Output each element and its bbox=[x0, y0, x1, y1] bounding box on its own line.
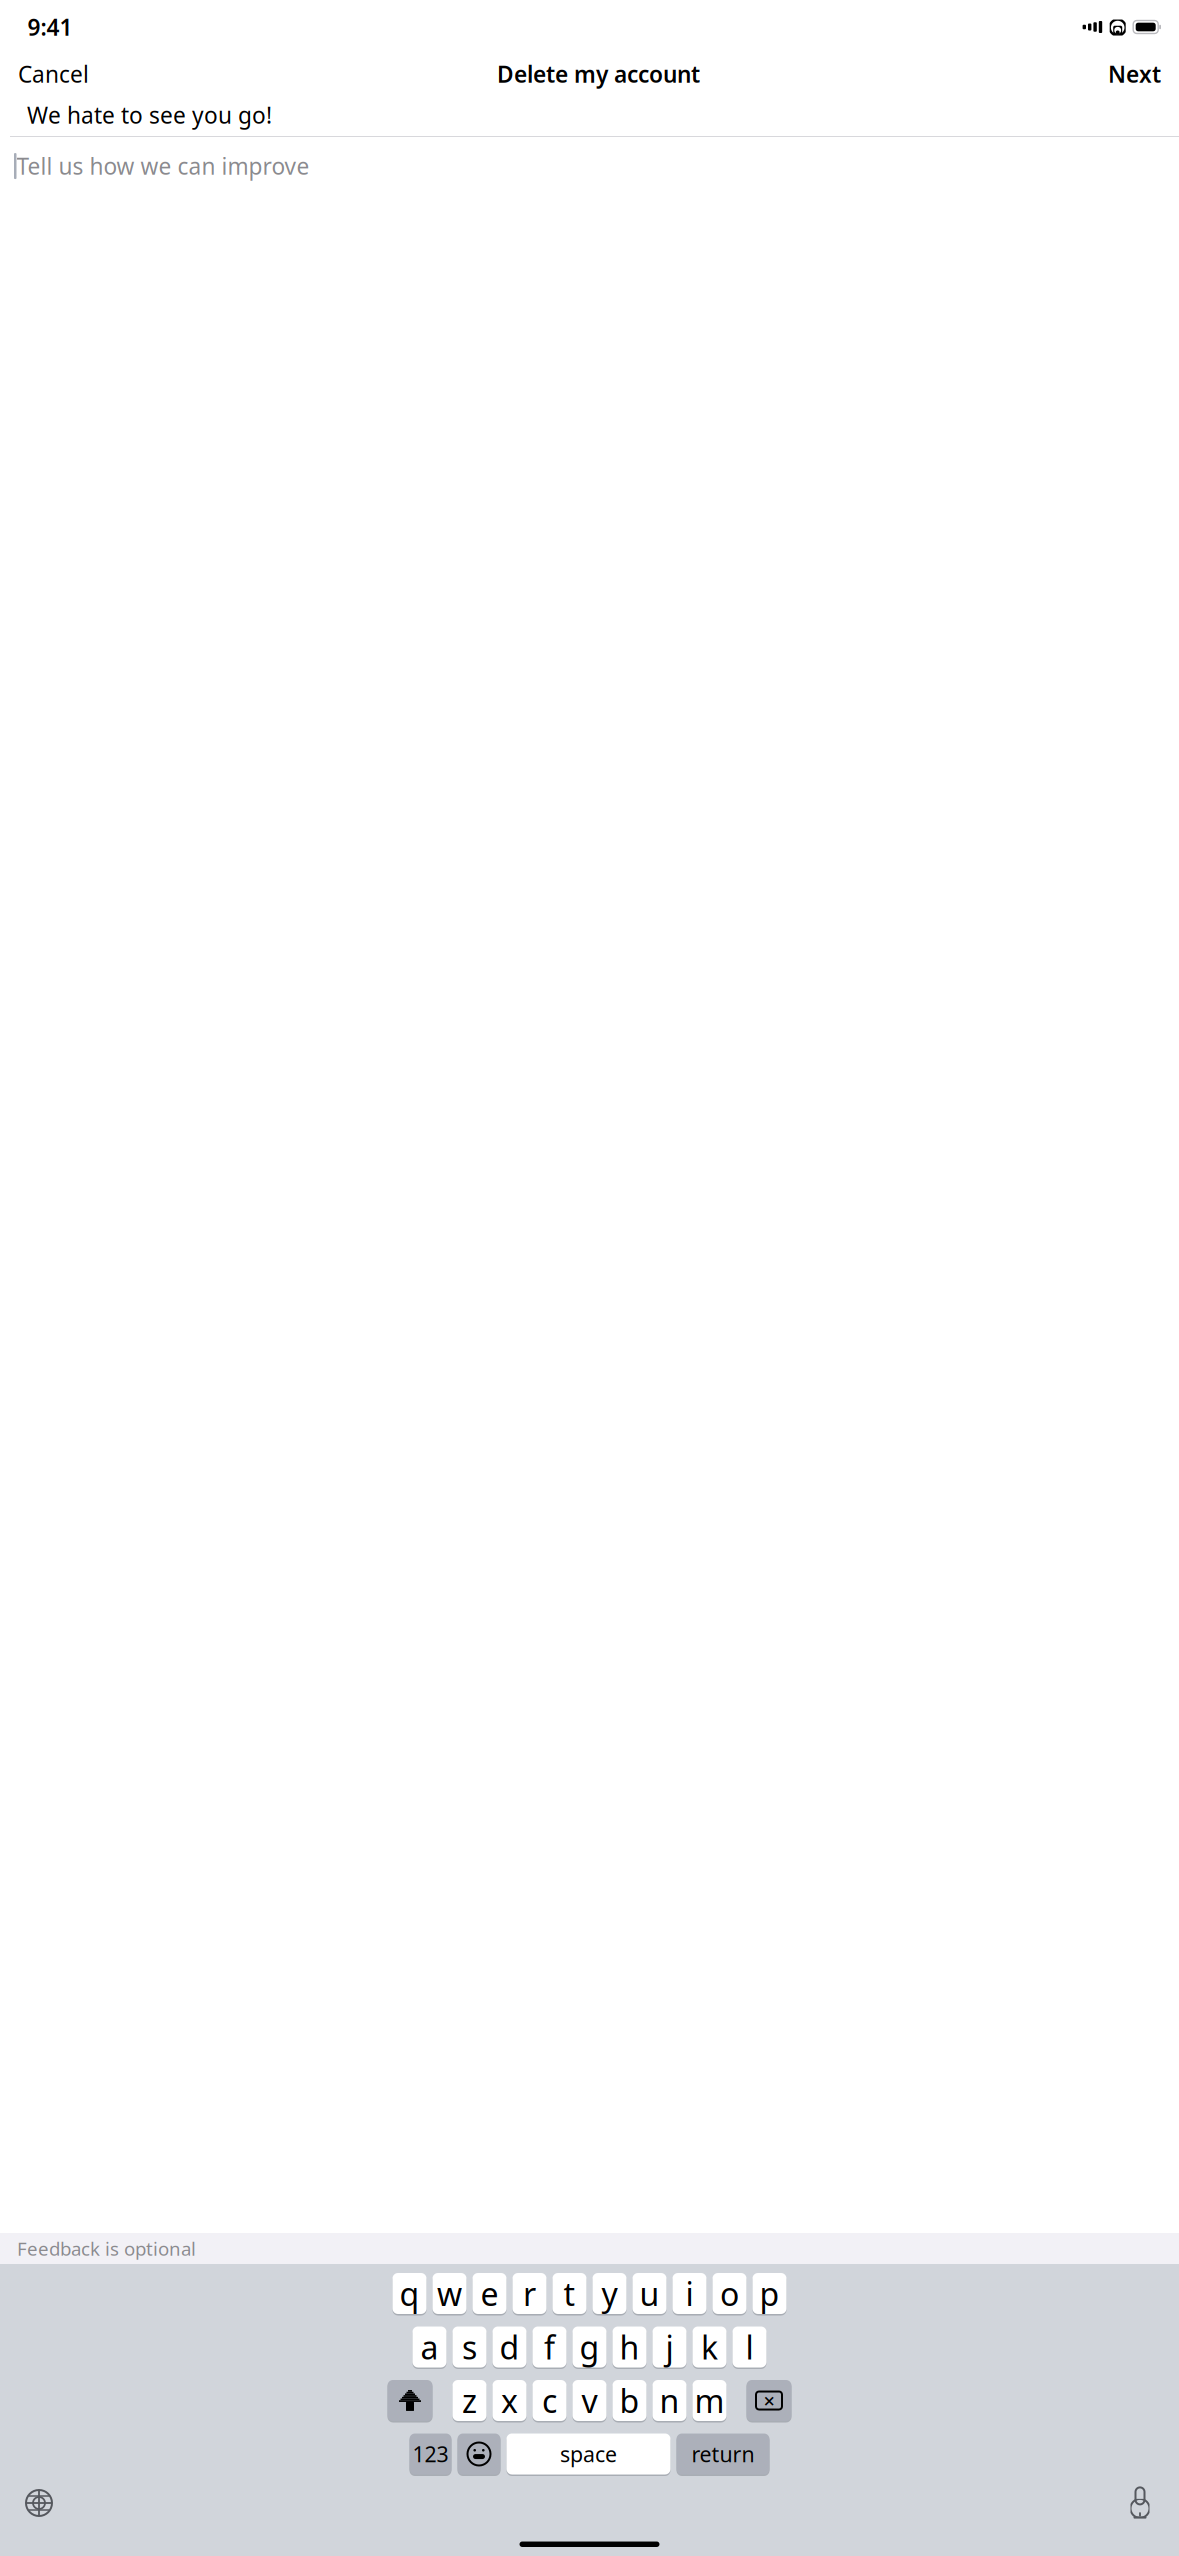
button[interactable]: h bbox=[612, 2326, 646, 2369]
button[interactable]: f bbox=[532, 2326, 566, 2369]
staticText: d bbox=[499, 2326, 519, 2368]
staticText: m bbox=[694, 2379, 724, 2422]
staticText: x bbox=[501, 2379, 518, 2422]
staticText: Cancel bbox=[18, 59, 89, 89]
button[interactable]: n bbox=[652, 2380, 686, 2422]
button[interactable]: r bbox=[512, 2273, 546, 2315]
staticText: l bbox=[745, 2326, 753, 2368]
button[interactable]: Shift bbox=[387, 2380, 432, 2422]
staticText: k bbox=[701, 2326, 718, 2368]
button[interactable]: q bbox=[392, 2273, 426, 2315]
button[interactable]: p bbox=[752, 2273, 786, 2315]
staticText: We hate to see you go! bbox=[27, 100, 272, 130]
staticText: r bbox=[523, 2272, 536, 2315]
staticText: y bbox=[601, 2272, 617, 2315]
staticText: j bbox=[665, 2326, 673, 2368]
button[interactable]: y bbox=[592, 2273, 626, 2315]
button[interactable]: o bbox=[712, 2273, 746, 2315]
button[interactable]: g bbox=[572, 2326, 606, 2369]
button[interactable]: m bbox=[692, 2380, 726, 2422]
button[interactable]: return bbox=[676, 2433, 769, 2476]
button[interactable]: x bbox=[492, 2380, 526, 2422]
button[interactable]: Delete bbox=[746, 2380, 791, 2422]
staticText: t bbox=[563, 2272, 575, 2315]
button[interactable]: l bbox=[732, 2326, 766, 2369]
staticText: h bbox=[619, 2326, 639, 2368]
button[interactable]: e bbox=[472, 2273, 506, 2315]
staticText: p bbox=[759, 2272, 779, 2315]
staticText: 9:41 bbox=[27, 12, 72, 42]
staticText: w bbox=[437, 2272, 462, 2315]
staticText: u bbox=[639, 2272, 659, 2315]
button[interactable]: Dictate bbox=[1113, 2482, 1167, 2524]
button[interactable]: j bbox=[652, 2326, 686, 2369]
staticText: Delete my account bbox=[497, 59, 700, 89]
button[interactable]: c bbox=[532, 2380, 566, 2422]
button[interactable]: i bbox=[672, 2273, 706, 2315]
button[interactable]: k bbox=[692, 2326, 726, 2369]
button[interactable]: space bbox=[506, 2433, 670, 2476]
button[interactable]: w bbox=[432, 2273, 466, 2315]
staticText: space bbox=[560, 2440, 617, 2468]
button[interactable]: Next bbox=[1104, 51, 1165, 97]
button[interactable]: Emoji bbox=[457, 2433, 500, 2476]
button[interactable]: t bbox=[552, 2273, 586, 2315]
button[interactable]: Next keyboard bbox=[12, 2482, 66, 2524]
staticText: q bbox=[399, 2272, 419, 2315]
staticText: z bbox=[462, 2379, 477, 2422]
staticText: Next bbox=[1108, 59, 1161, 89]
button[interactable]: Cancel bbox=[14, 51, 93, 97]
button[interactable]: z bbox=[452, 2380, 486, 2422]
button[interactable]: a bbox=[412, 2326, 446, 2369]
staticText: × bbox=[763, 2387, 774, 2414]
staticText: Tell us how we can improve bbox=[16, 151, 309, 181]
button[interactable]: 123 bbox=[409, 2433, 451, 2476]
staticText: s bbox=[462, 2326, 477, 2368]
staticText: f bbox=[544, 2326, 555, 2368]
staticText: g bbox=[579, 2326, 599, 2368]
staticText: 123 bbox=[412, 2440, 448, 2468]
staticText: return bbox=[691, 2440, 754, 2468]
staticText: v bbox=[581, 2379, 597, 2422]
button[interactable]: u bbox=[632, 2273, 666, 2315]
button[interactable]: d bbox=[492, 2326, 526, 2369]
staticText: n bbox=[659, 2379, 679, 2422]
staticText: c bbox=[542, 2379, 557, 2422]
button[interactable]: b bbox=[612, 2380, 646, 2422]
staticText: e bbox=[480, 2272, 498, 2315]
button[interactable]: s bbox=[452, 2326, 486, 2369]
staticText: i bbox=[685, 2272, 693, 2315]
staticText: a bbox=[420, 2326, 438, 2368]
staticText: b bbox=[619, 2379, 639, 2422]
button[interactable]: v bbox=[572, 2380, 606, 2422]
staticText: Feedback is optional bbox=[17, 2236, 196, 2261]
staticText: o bbox=[720, 2272, 739, 2315]
